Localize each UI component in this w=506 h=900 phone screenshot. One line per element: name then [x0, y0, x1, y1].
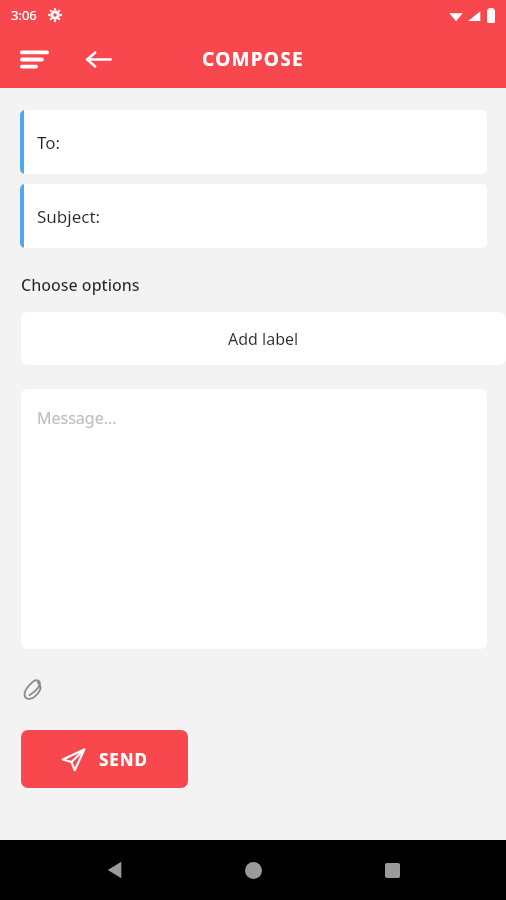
staticText: Message... [37, 407, 117, 429]
staticText: Subject: [37, 205, 101, 228]
staticText: 3:06 [11, 6, 37, 24]
staticText: To: [37, 131, 61, 154]
button[interactable]: Subject: [20, 184, 487, 248]
button[interactable]: Add label [21, 312, 506, 365]
staticText: SEND [99, 748, 148, 771]
button[interactable]: SEND [21, 730, 188, 788]
button[interactable]: Recent apps [368, 846, 416, 894]
staticText: Choose options [21, 274, 140, 296]
button[interactable]: Attach file [12, 669, 54, 711]
button[interactable]: Home [229, 846, 277, 894]
button[interactable]: Back [76, 37, 120, 81]
staticText: COMPOSE [202, 46, 304, 72]
button[interactable]: To: [20, 110, 487, 174]
button[interactable]: Back [91, 846, 139, 894]
button[interactable]: Open navigation menu [12, 37, 56, 81]
staticText: Add label [228, 328, 299, 350]
